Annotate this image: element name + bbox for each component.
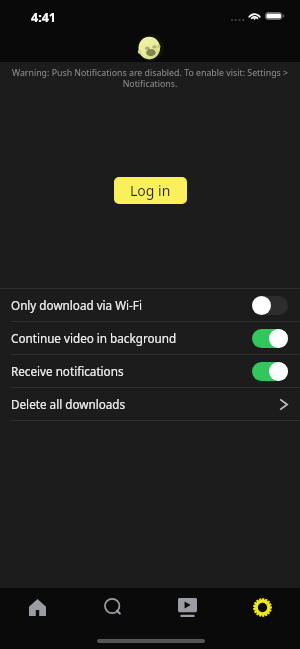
staticText: Continue video in background: [11, 330, 252, 346]
button[interactable]: Receive notifications: [0, 355, 300, 387]
button[interactable]: Delete all downloads: [0, 388, 300, 420]
button[interactable]: Continue video in background: [0, 322, 300, 354]
button[interactable]: Search: [75, 587, 150, 627]
staticText: 4:41: [31, 9, 56, 26]
button[interactable]: Settings: [225, 587, 300, 627]
staticText: Receive notifications: [11, 363, 252, 379]
button[interactable]: Profile: [137, 34, 164, 61]
button[interactable]: Library: [150, 587, 225, 627]
staticText: Delete all downloads: [11, 396, 280, 412]
staticText: Only download via Wi-Fi: [11, 297, 252, 313]
staticText: Warning: Push Notifications are disabled…: [9, 67, 291, 90]
button[interactable]: Log in: [114, 177, 187, 204]
button[interactable]: Home: [0, 587, 75, 627]
button[interactable]: Only download via Wi-Fi: [0, 289, 300, 321]
staticText: Log in: [130, 181, 171, 200]
